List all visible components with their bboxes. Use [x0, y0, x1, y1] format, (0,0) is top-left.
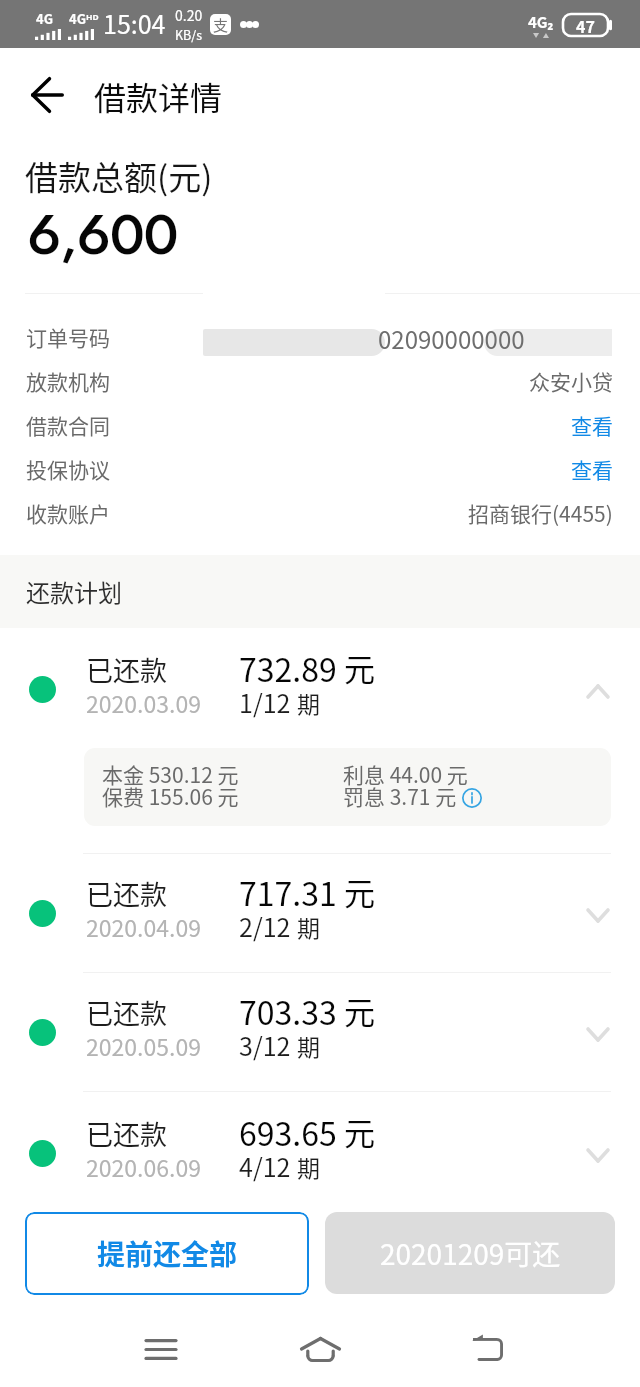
staticText: 2020.06.09: [86, 1150, 201, 1183]
staticText: 期: [297, 910, 320, 943]
staticText: 703.33: [239, 988, 337, 1034]
staticText: 还款计划: [26, 574, 122, 609]
staticText: 借款详情: [94, 73, 223, 119]
button[interactable]: 借款合同: [26, 403, 613, 447]
button[interactable]: Home: [274, 1307, 366, 1387]
staticText: 2/12: [239, 908, 291, 944]
button[interactable]: Back: [15, 63, 79, 127]
staticText: 支: [213, 14, 229, 35]
staticText: 732.89: [239, 645, 337, 691]
staticText: 3/12: [239, 1027, 291, 1063]
staticText: 2020.05.09: [86, 1029, 201, 1062]
staticText: 元: [344, 645, 375, 690]
button[interactable]: 20201209可还: [325, 1212, 615, 1294]
staticText: 已还款: [86, 874, 167, 913]
staticText: 已还款: [86, 1114, 167, 1153]
staticText: 6,600: [27, 194, 178, 275]
staticText: 693.65: [239, 1109, 337, 1155]
staticText: 期: [297, 1029, 320, 1062]
staticText: KB/s: [175, 25, 203, 43]
staticText: 借款合同: [26, 410, 110, 440]
button[interactable]: Recent apps: [115, 1307, 207, 1387]
staticText: 02090000000: [378, 321, 525, 356]
staticText: 元: [344, 1109, 375, 1154]
staticText: 已还款: [86, 993, 167, 1032]
button[interactable]: Back: [442, 1307, 534, 1387]
staticText: 保费 155.06 元: [102, 781, 239, 811]
staticText: 已还款: [86, 650, 167, 689]
staticText: 4Gᴴᴰ: [69, 9, 99, 28]
other: Expand: [576, 1012, 620, 1056]
staticText: 期: [297, 686, 320, 719]
button[interactable]: 已还款: [0, 859, 640, 969]
staticText: 本金 530.12 元: [102, 759, 239, 789]
other: Collapse: [576, 669, 620, 713]
staticText: 罚息 3.71 元: [343, 781, 457, 811]
button[interactable]: 已还款: [0, 978, 640, 1088]
staticText: 提前还全部: [97, 1233, 238, 1274]
staticText: 收款账户: [26, 498, 110, 528]
staticText: 2020.04.09: [86, 910, 201, 943]
staticText: 47: [576, 14, 595, 37]
staticText: 4G₂: [528, 11, 554, 33]
staticText: 订单号码: [26, 322, 110, 352]
staticText: 元: [344, 869, 375, 914]
staticText: 1/12: [239, 684, 291, 720]
staticText: 投保协议: [26, 454, 110, 484]
button[interactable]: 已还款: [0, 1099, 640, 1209]
staticText: 15:04: [103, 5, 166, 41]
button[interactable]: 已还款: [0, 635, 640, 745]
staticText: 利息 44.00 元: [343, 759, 468, 789]
other: Expand: [576, 893, 620, 937]
staticText: 放款机构: [26, 366, 110, 396]
staticText: 717.31: [239, 869, 337, 915]
staticText: 查看: [571, 454, 613, 484]
staticText: 招商银行(4455): [468, 498, 613, 528]
button[interactable]: 投保协议: [26, 447, 613, 491]
staticText: 4G: [36, 9, 53, 28]
staticText: 2020.03.09: [86, 686, 201, 719]
staticText: 借款总额(元): [25, 152, 213, 200]
staticText: 众安小贷: [529, 366, 613, 396]
staticText: 20201209可还: [380, 1233, 561, 1274]
staticText: 4/12: [239, 1148, 291, 1184]
button[interactable]: 提前还全部: [25, 1212, 309, 1295]
other: Expand: [576, 1133, 620, 1177]
staticText: 元: [344, 988, 375, 1033]
staticText: 查看: [571, 410, 613, 440]
staticText: 0.20: [175, 5, 203, 25]
staticText: 期: [297, 1150, 320, 1183]
